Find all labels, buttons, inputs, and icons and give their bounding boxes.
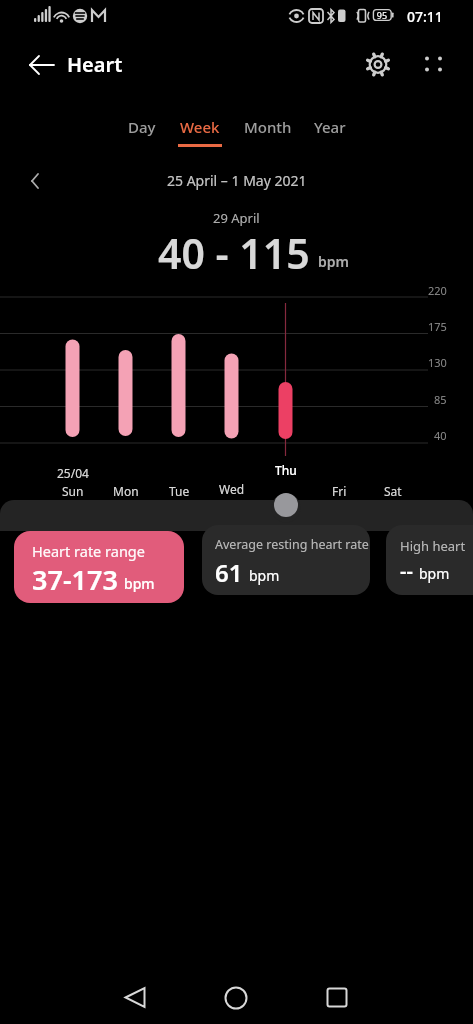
- staticText: bpm: [419, 564, 450, 583]
- staticText: 40 - 115: [158, 225, 310, 281]
- staticText: 220: [428, 283, 447, 298]
- staticText: Year: [314, 117, 346, 137]
- button[interactable]: [317, 978, 357, 1018]
- staticText: High heart: [400, 537, 466, 555]
- staticText: 25 April – 1 May 2021: [167, 171, 307, 190]
- button[interactable]: Week: [178, 117, 222, 147]
- staticText: bpm: [318, 252, 349, 271]
- staticText: 25/04: [57, 465, 89, 481]
- button[interactable]: High heart: [386, 525, 473, 595]
- staticText: 40: [434, 428, 447, 443]
- staticText: 85: [434, 392, 447, 407]
- button[interactable]: [18, 46, 58, 86]
- button[interactable]: [18, 164, 52, 198]
- staticText: 07:11: [407, 7, 443, 26]
- staticText: 37-173: [32, 561, 118, 598]
- staticText: 61: [215, 556, 243, 589]
- button[interactable]: [216, 978, 256, 1018]
- button[interactable]: [416, 44, 452, 80]
- staticText: Thu: [275, 462, 297, 478]
- staticText: 95: [373, 9, 391, 21]
- button[interactable]: Day: [128, 117, 156, 147]
- staticText: Mon: [113, 483, 139, 499]
- button[interactable]: [115, 978, 155, 1018]
- staticText: Sat: [384, 483, 402, 499]
- staticText: bpm: [249, 566, 280, 585]
- button[interactable]: Year: [314, 117, 346, 147]
- button[interactable]: Average resting heart rate: [202, 525, 370, 595]
- staticText: Heart rate range: [32, 541, 145, 561]
- staticText: Heart: [67, 51, 123, 78]
- staticText: 175: [428, 319, 447, 334]
- staticText: Sun: [62, 483, 84, 499]
- staticText: 29 April: [213, 209, 260, 227]
- button[interactable]: Month: [244, 117, 292, 147]
- staticText: Month: [244, 117, 292, 137]
- button[interactable]: [274, 493, 298, 517]
- staticText: Wed: [219, 481, 245, 497]
- staticText: --: [400, 557, 413, 584]
- staticText: 130: [428, 355, 447, 370]
- staticText: Fri: [332, 483, 347, 499]
- button[interactable]: Heart rate range: [14, 531, 184, 603]
- staticText: Week: [180, 117, 220, 137]
- button[interactable]: [358, 44, 398, 84]
- staticText: Tue: [169, 483, 190, 499]
- staticText: Day: [128, 117, 156, 137]
- staticText: bpm: [124, 574, 155, 593]
- staticText: Average resting heart rate: [215, 536, 369, 553]
